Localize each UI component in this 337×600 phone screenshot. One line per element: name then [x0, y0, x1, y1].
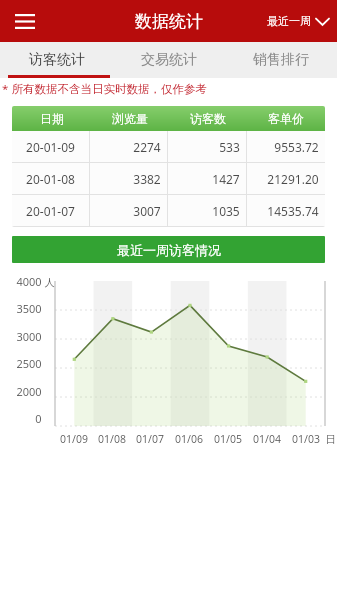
staticText: 20-01-07	[26, 203, 75, 219]
staticText: * 所有数据不含当日实时数据，仅作参考	[2, 81, 207, 97]
staticText: 2500	[16, 356, 42, 371]
staticText: 1035	[212, 203, 240, 219]
staticText: 01/07	[136, 432, 164, 446]
staticText: 人	[42, 275, 55, 289]
staticText: 最近一周访客情况	[117, 242, 221, 258]
button[interactable]: 20-01-09	[12, 131, 325, 162]
button[interactable]: 访客统计	[0, 42, 113, 78]
staticText: 访客数	[190, 111, 226, 126]
staticText: 2274	[133, 139, 161, 155]
staticText: 0	[35, 411, 42, 426]
staticText: 01/05	[214, 432, 242, 446]
staticText: 9553.72	[274, 139, 319, 155]
staticText: 销售排行	[253, 51, 309, 69]
staticText: 14535.74	[267, 203, 319, 219]
button[interactable]: 20-01-07	[12, 195, 325, 226]
staticText: 日	[325, 433, 336, 446]
staticText: 浏览量	[112, 111, 148, 126]
staticText: 日期	[40, 111, 64, 126]
staticText: 客单价	[268, 111, 304, 126]
staticText: 3382	[133, 171, 161, 187]
button[interactable]: 交易统计	[113, 42, 225, 78]
staticText: 访客统计	[29, 51, 85, 69]
staticText: 最近一周	[267, 14, 311, 28]
button[interactable]: 最近一周	[267, 14, 329, 28]
staticText: 01/08	[98, 432, 126, 446]
staticText: 交易统计	[141, 51, 197, 69]
staticText: 20-01-08	[26, 171, 75, 187]
staticText: 2000	[16, 384, 42, 399]
button[interactable]: 20-01-08	[12, 163, 325, 194]
staticText: 533	[219, 139, 240, 155]
staticText: 01/09	[60, 432, 88, 446]
staticText: 1427	[212, 171, 240, 187]
button[interactable]: 最近一周访客情况	[12, 236, 325, 263]
staticText: 01/03	[292, 432, 320, 446]
button[interactable]: Menu	[6, 2, 44, 40]
staticText: 3007	[133, 203, 161, 219]
staticText: 01/06	[175, 432, 203, 446]
staticText: 数据统计	[135, 11, 203, 32]
staticText: 3500	[16, 301, 42, 316]
staticText: 01/04	[253, 432, 281, 446]
staticText: 3000	[16, 329, 42, 344]
staticText: 4000	[16, 274, 42, 289]
staticText: 21291.20	[267, 171, 319, 187]
button[interactable]: 销售排行	[225, 42, 337, 78]
staticText: 20-01-09	[26, 139, 75, 155]
